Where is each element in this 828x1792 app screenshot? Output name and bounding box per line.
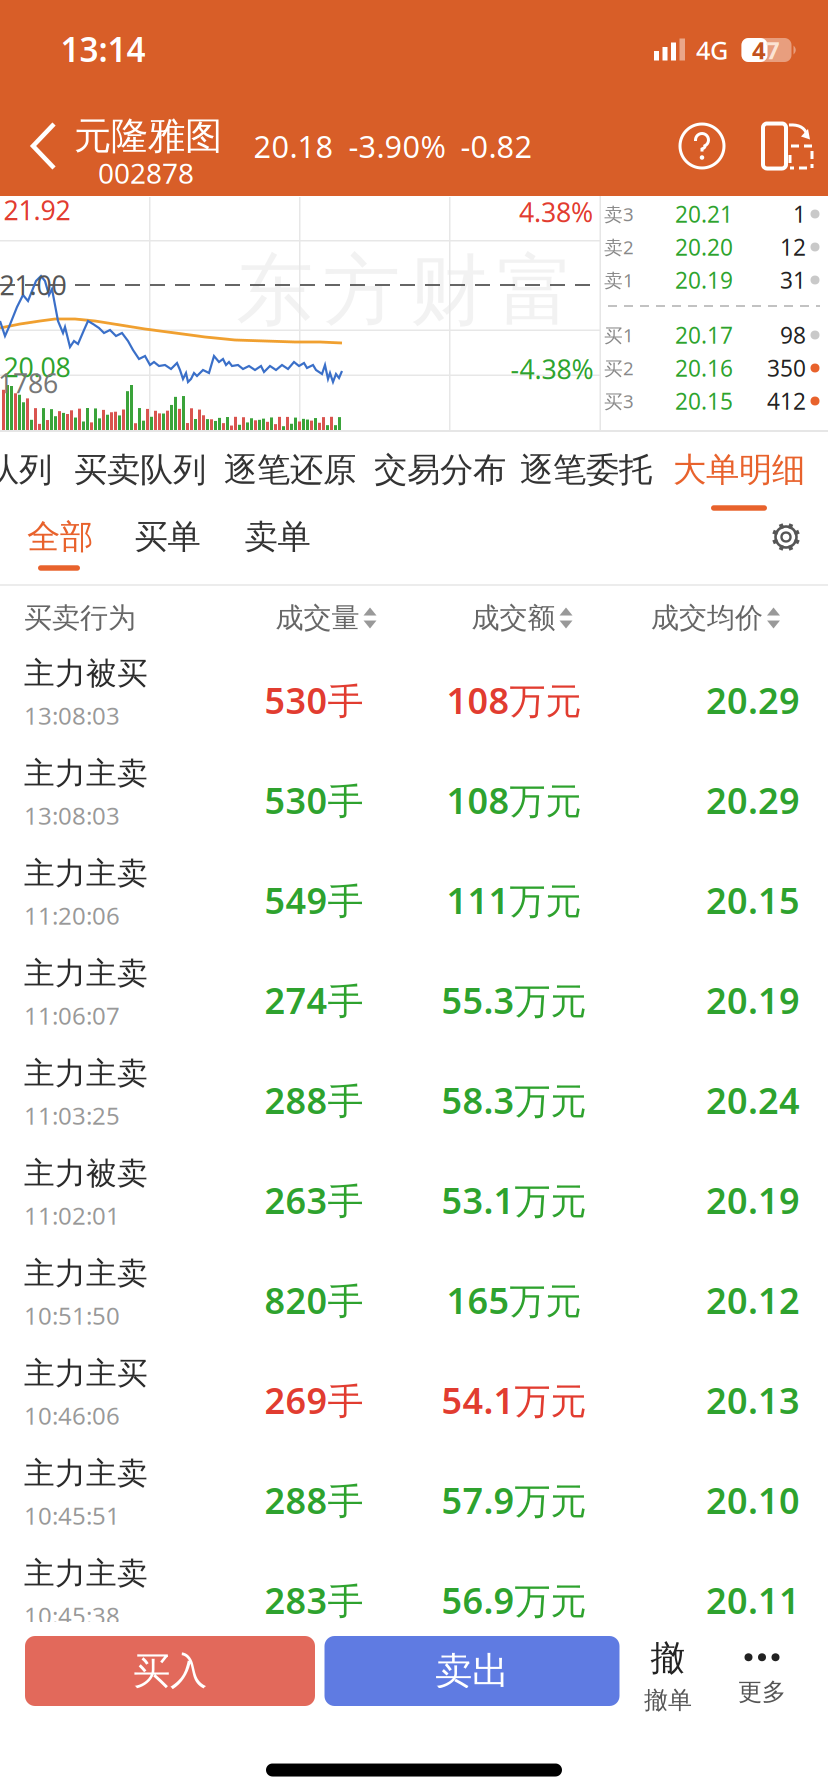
staticText: 主力主卖 — [24, 855, 148, 892]
staticText: 10:45:51 — [24, 1499, 120, 1531]
staticText: 卖2 — [604, 235, 634, 259]
button[interactable]: 成交量 — [226, 590, 426, 646]
staticText: 21.92 — [3, 192, 70, 228]
staticText: 主力被卖 — [24, 1155, 148, 1192]
staticText: 108万元 — [446, 676, 581, 724]
staticText: 买卖行为 — [24, 601, 136, 635]
staticText: 成交均价 — [651, 601, 763, 635]
button[interactable]: 逐笔委托 — [507, 431, 665, 509]
staticText: 卖单 — [244, 516, 310, 557]
staticText: 13:14 — [60, 27, 145, 71]
staticText: 买单 — [134, 516, 200, 557]
staticText: 10:45:38 — [24, 1599, 120, 1631]
staticText: 主力主卖 — [24, 955, 148, 992]
staticText: 549手 — [264, 876, 363, 924]
staticText: 买1 — [604, 323, 634, 347]
staticText: 10:51:50 — [24, 1299, 120, 1331]
staticText: 逐笔委托 — [520, 449, 652, 490]
staticText: 4G — [696, 33, 728, 67]
staticText: 283手 — [264, 1576, 363, 1624]
staticText: 20.20 — [675, 232, 733, 262]
staticText: 31 — [780, 265, 806, 295]
staticText: 20.19 — [675, 265, 733, 295]
staticText: 买3 — [604, 389, 634, 413]
staticText: 20.16 — [675, 353, 733, 383]
button[interactable]: 交易分布 — [361, 431, 519, 509]
staticText: 20.18 — [253, 126, 333, 166]
staticText: 全部 — [27, 516, 93, 557]
staticText: 412 — [767, 386, 806, 416]
staticText: 撤 — [650, 1637, 685, 1680]
button[interactable]: 主力主卖 — [0, 1450, 828, 1550]
staticText: 288手 — [264, 1476, 363, 1524]
staticText: 成交量 — [275, 601, 359, 635]
staticText: 1 — [793, 199, 806, 229]
button[interactable]: Help — [675, 119, 729, 173]
button[interactable]: 卖单 — [227, 506, 327, 568]
staticText: 20.10 — [706, 1476, 800, 1524]
staticText: 11:06:07 — [24, 999, 120, 1031]
button[interactable]: 主力主卖 — [0, 1550, 828, 1650]
staticText: 主力主买 — [24, 1355, 148, 1392]
staticText: 13:08:03 — [24, 799, 120, 831]
staticText: 20.08 — [3, 349, 70, 385]
button[interactable]: 逐笔还原 — [211, 431, 369, 509]
staticText: 卖1 — [604, 268, 634, 292]
staticText: 98 — [780, 320, 806, 350]
button[interactable]: 大单明细 — [660, 431, 818, 509]
button[interactable]: 卖出 — [324, 1636, 619, 1706]
button[interactable]: Back — [14, 120, 74, 172]
staticText: 54.1万元 — [441, 1376, 586, 1424]
button[interactable]: 买入 — [25, 1636, 315, 1706]
staticText: 主力主卖 — [24, 1455, 148, 1492]
button[interactable]: 主力被买 — [0, 650, 828, 750]
staticText: 4.38% — [519, 194, 593, 230]
button[interactable]: More — [722, 1642, 802, 1718]
staticText: 55.3万元 — [441, 976, 586, 1024]
staticText: 20.21 — [675, 199, 733, 229]
button[interactable]: 主力被卖 — [0, 1150, 828, 1250]
staticText: 20.29 — [706, 676, 800, 724]
staticText: -0.82 — [460, 126, 532, 166]
staticText: 165万元 — [446, 1276, 581, 1324]
button[interactable]: 成交额 — [422, 590, 622, 646]
button[interactable]: 全部 — [10, 506, 110, 568]
button[interactable]: 主力主卖 — [0, 750, 828, 850]
staticText: 1786 — [0, 365, 58, 401]
staticText: 20.12 — [706, 1276, 800, 1324]
staticText: 13:08:03 — [24, 699, 120, 731]
staticText: 卖3 — [604, 202, 634, 226]
button[interactable]: 主力主卖 — [0, 850, 828, 950]
button[interactable]: Rotate to landscape — [758, 118, 816, 174]
staticText: 20.17 — [675, 320, 733, 350]
staticText: 58.3万元 — [441, 1076, 586, 1124]
staticText: 买卖队列 — [74, 449, 206, 490]
staticText: 东方财富 — [236, 243, 574, 338]
staticText: 20.19 — [706, 1176, 800, 1224]
staticText: 买2 — [604, 356, 634, 380]
staticText: 10:46:06 — [24, 1399, 120, 1431]
button[interactable]: 撤 — [628, 1634, 708, 1718]
staticText: 57.9万元 — [441, 1476, 586, 1524]
button[interactable]: 买卖队列 — [61, 431, 219, 509]
button[interactable]: Settings — [761, 512, 811, 562]
button[interactable]: 主力主买 — [0, 1350, 828, 1450]
staticText: 269手 — [264, 1376, 363, 1424]
staticText: 交易分布 — [374, 449, 506, 490]
staticText: 002878 — [98, 154, 194, 192]
button[interactable]: 成交均价 — [594, 590, 780, 646]
staticText: 820手 — [264, 1276, 363, 1324]
staticText: 20.24 — [706, 1076, 800, 1124]
staticText: 288手 — [264, 1076, 363, 1124]
staticText: 12 — [780, 232, 806, 262]
staticText: 7 — [766, 34, 780, 66]
staticText: 20.15 — [675, 386, 733, 416]
staticText: 263手 — [264, 1176, 363, 1224]
button[interactable]: 主力主卖 — [0, 1250, 828, 1350]
button[interactable]: 主力主卖 — [0, 1050, 828, 1150]
staticText: 530手 — [264, 776, 363, 824]
button[interactable]: 买单 — [117, 506, 217, 568]
staticText: 撤单 — [644, 1686, 692, 1715]
staticText: 买入 — [133, 1648, 207, 1694]
button[interactable]: 主力主卖 — [0, 950, 828, 1050]
